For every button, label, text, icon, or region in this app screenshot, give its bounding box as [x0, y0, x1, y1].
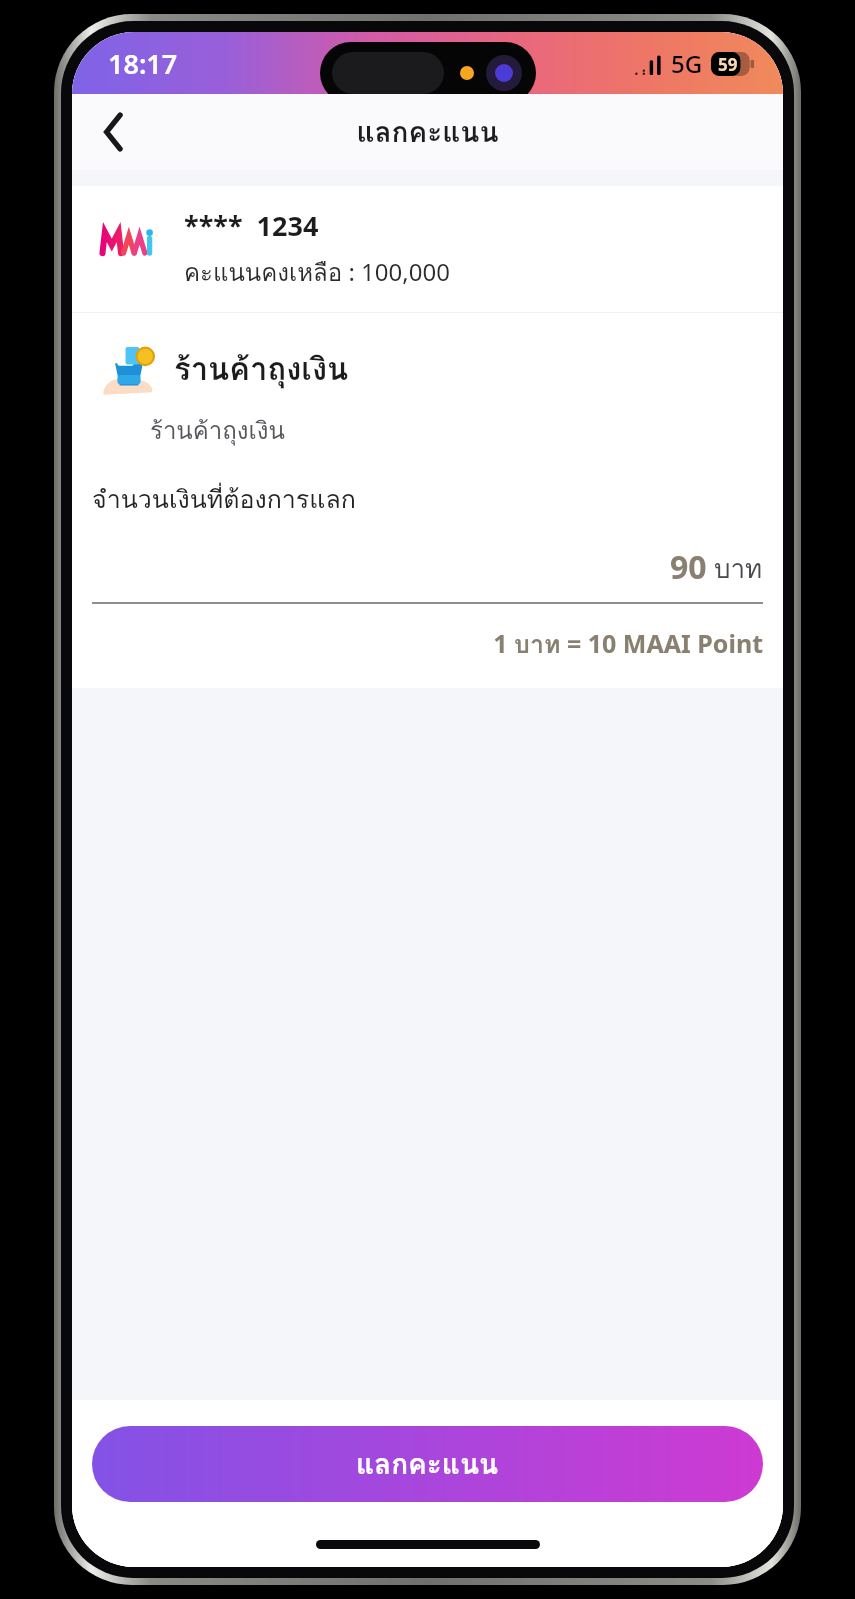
staticText: ร้านค้าถุงเงิน — [150, 411, 285, 449]
staticText: แลกคะแนน — [356, 1442, 499, 1487]
staticText: ร้านค้าถุงเงิน — [174, 344, 349, 393]
staticText: 90 — [670, 545, 707, 589]
staticText: **** 1234 — [184, 207, 319, 244]
staticText: แลกคะแนน — [356, 110, 499, 155]
staticText: 59 — [718, 53, 738, 76]
button[interactable]: แลกคะแนน — [92, 1426, 763, 1502]
staticText: จำนวนเงินที่ต้องการแลก — [92, 479, 356, 519]
button[interactable]: Back — [86, 104, 142, 160]
staticText: คะแนนคงเหลือ : 100,000 — [184, 253, 450, 291]
button[interactable]: ร้านค้าถุงเงิน — [72, 313, 783, 455]
button[interactable]: **** 1234 — [72, 186, 783, 312]
button[interactable]: 90 — [92, 545, 763, 589]
staticText: บาท — [714, 548, 763, 589]
staticText: 5G — [671, 47, 703, 80]
staticText: 18:17 — [108, 45, 178, 82]
staticText: 1 บาท = 10 MAAI Point — [92, 624, 763, 664]
